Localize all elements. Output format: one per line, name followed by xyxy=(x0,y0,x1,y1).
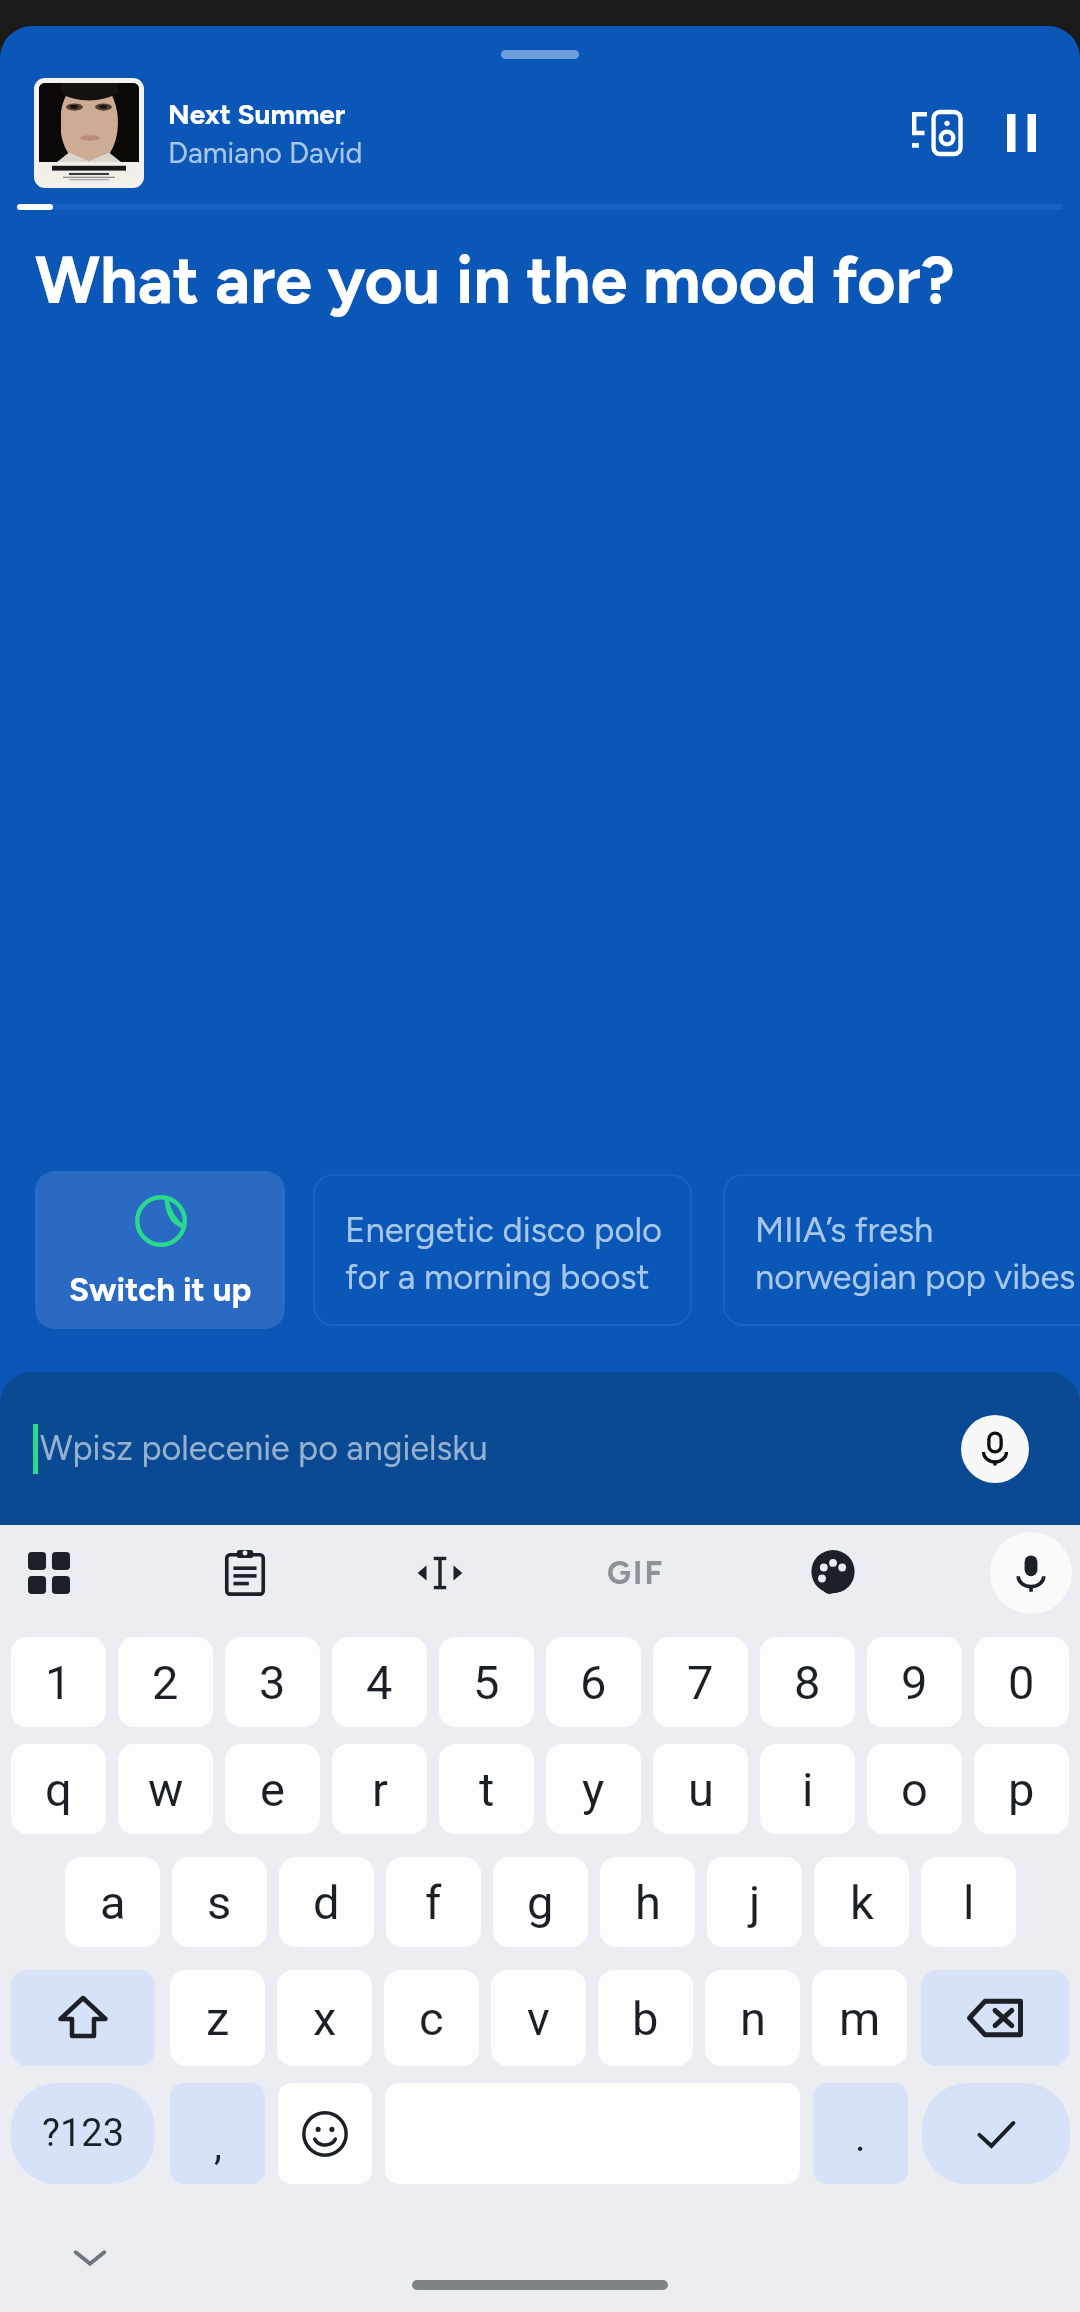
staticText: u xyxy=(688,1762,714,1817)
button[interactable]: Prompt input field xyxy=(0,1389,900,1509)
staticText: n xyxy=(740,1991,766,2046)
button[interactable]: u xyxy=(653,1744,748,1834)
staticText: 1 xyxy=(45,1655,72,1710)
button[interactable]: Enter xyxy=(922,2083,1070,2184)
staticText: w xyxy=(148,1762,184,1817)
staticText: t xyxy=(479,1762,495,1817)
staticText: a xyxy=(100,1875,126,1930)
button[interactable]: 2 xyxy=(118,1637,213,1727)
staticText: . xyxy=(855,2114,866,2161)
button[interactable]: 3 xyxy=(225,1637,320,1727)
button[interactable]: , xyxy=(170,2083,265,2184)
staticText: 3 xyxy=(259,1655,286,1710)
button[interactable]: c xyxy=(384,1970,479,2066)
button[interactable]: p xyxy=(974,1744,1069,1834)
staticText: 8 xyxy=(794,1655,821,1710)
staticText: c xyxy=(419,1991,444,2046)
button[interactable]: MIIA’s fresh norwegian pop vibes xyxy=(723,1174,1080,1326)
button[interactable]: Backspace xyxy=(921,1970,1069,2066)
staticText: r xyxy=(372,1762,388,1817)
staticText: x xyxy=(313,1991,337,2046)
button[interactable]: x xyxy=(277,1970,372,2066)
button[interactable]: 4 xyxy=(332,1637,427,1727)
staticText: ?123 xyxy=(42,2111,125,2156)
button[interactable]: h xyxy=(600,1857,695,1947)
staticText: d xyxy=(313,1875,340,1930)
button[interactable]: 1 xyxy=(11,1637,106,1727)
staticText: l xyxy=(963,1875,975,1930)
button[interactable]: i xyxy=(760,1744,855,1834)
staticText: v xyxy=(527,1991,550,2046)
staticText: s xyxy=(207,1875,232,1930)
button[interactable]: Voice typing xyxy=(990,1532,1072,1614)
staticText: Damiano David xyxy=(168,135,363,170)
button[interactable]: GIF xyxy=(581,1530,691,1616)
staticText: y xyxy=(582,1762,605,1817)
staticText: h xyxy=(635,1875,661,1930)
staticText: q xyxy=(45,1762,72,1817)
button[interactable]: Hide keyboard xyxy=(66,2233,114,2281)
button[interactable]: g xyxy=(493,1857,588,1947)
button[interactable]: m xyxy=(812,1970,907,2066)
staticText: What are you in the mood for? xyxy=(35,240,955,319)
staticText: 7 xyxy=(687,1655,714,1710)
button[interactable]: d xyxy=(279,1857,374,1947)
staticText: k xyxy=(850,1875,874,1930)
button[interactable]: a xyxy=(65,1857,160,1947)
button[interactable]: Text editing xyxy=(397,1530,483,1616)
button[interactable]: Connect to a device xyxy=(887,81,985,185)
staticText: 2 xyxy=(152,1655,179,1710)
button[interactable]: Shift xyxy=(11,1970,155,2066)
button[interactable]: Switch it up xyxy=(35,1171,285,1329)
button[interactable]: l xyxy=(921,1857,1016,1947)
staticText: z xyxy=(206,1991,230,2046)
button[interactable]: r xyxy=(332,1744,427,1834)
button[interactable]: t xyxy=(439,1744,534,1834)
staticText: Switch it up xyxy=(69,1270,252,1310)
button[interactable]: Voice input xyxy=(961,1415,1029,1483)
staticText: f xyxy=(425,1875,442,1930)
staticText: 9 xyxy=(901,1655,928,1710)
button[interactable]: 5 xyxy=(439,1637,534,1727)
button[interactable]: 0 xyxy=(974,1637,1069,1727)
staticText: g xyxy=(527,1875,554,1930)
button[interactable]: v xyxy=(491,1970,586,2066)
button[interactable]: Themes xyxy=(790,1530,876,1616)
button[interactable]: e xyxy=(225,1744,320,1834)
staticText: GIF xyxy=(607,1554,665,1592)
button[interactable]: Keyboard menu xyxy=(6,1530,92,1616)
staticText: Next Summer xyxy=(168,97,346,131)
button[interactable]: . xyxy=(813,2083,908,2184)
button[interactable]: s xyxy=(172,1857,267,1947)
button[interactable]: j xyxy=(707,1857,802,1947)
button[interactable]: 8 xyxy=(760,1637,855,1727)
button[interactable]: ?123 xyxy=(11,2083,155,2184)
button[interactable]: f xyxy=(386,1857,481,1947)
button[interactable]: 6 xyxy=(546,1637,641,1727)
button[interactable]: Collapse xyxy=(501,50,579,59)
button[interactable]: 9 xyxy=(867,1637,962,1727)
staticText: o xyxy=(901,1762,928,1817)
button[interactable]: Energetic disco polo for a morning boost xyxy=(313,1174,692,1326)
button[interactable]: n xyxy=(705,1970,800,2066)
button[interactable]: w xyxy=(118,1744,213,1834)
button[interactable]: o xyxy=(867,1744,962,1834)
button[interactable]: Clipboard xyxy=(202,1530,288,1616)
button[interactable]: b xyxy=(598,1970,693,2066)
button[interactable]: k xyxy=(814,1857,909,1947)
button[interactable]: Pause xyxy=(985,81,1058,185)
button[interactable]: Emoji xyxy=(278,2083,372,2184)
button[interactable]: 7 xyxy=(653,1637,748,1727)
button[interactable]: q xyxy=(11,1744,106,1834)
staticText: 0 xyxy=(1008,1655,1035,1710)
staticText: p xyxy=(1008,1762,1035,1817)
button[interactable]: y xyxy=(546,1744,641,1834)
staticText: Energetic disco polo for a morning boost xyxy=(345,1209,662,1298)
staticText: b xyxy=(632,1991,659,2046)
staticText: 4 xyxy=(366,1655,393,1710)
button[interactable]: Next Summer xyxy=(0,78,1080,188)
staticText: e xyxy=(260,1762,285,1817)
staticText: m xyxy=(839,1991,881,2046)
button[interactable]: z xyxy=(170,1970,265,2066)
